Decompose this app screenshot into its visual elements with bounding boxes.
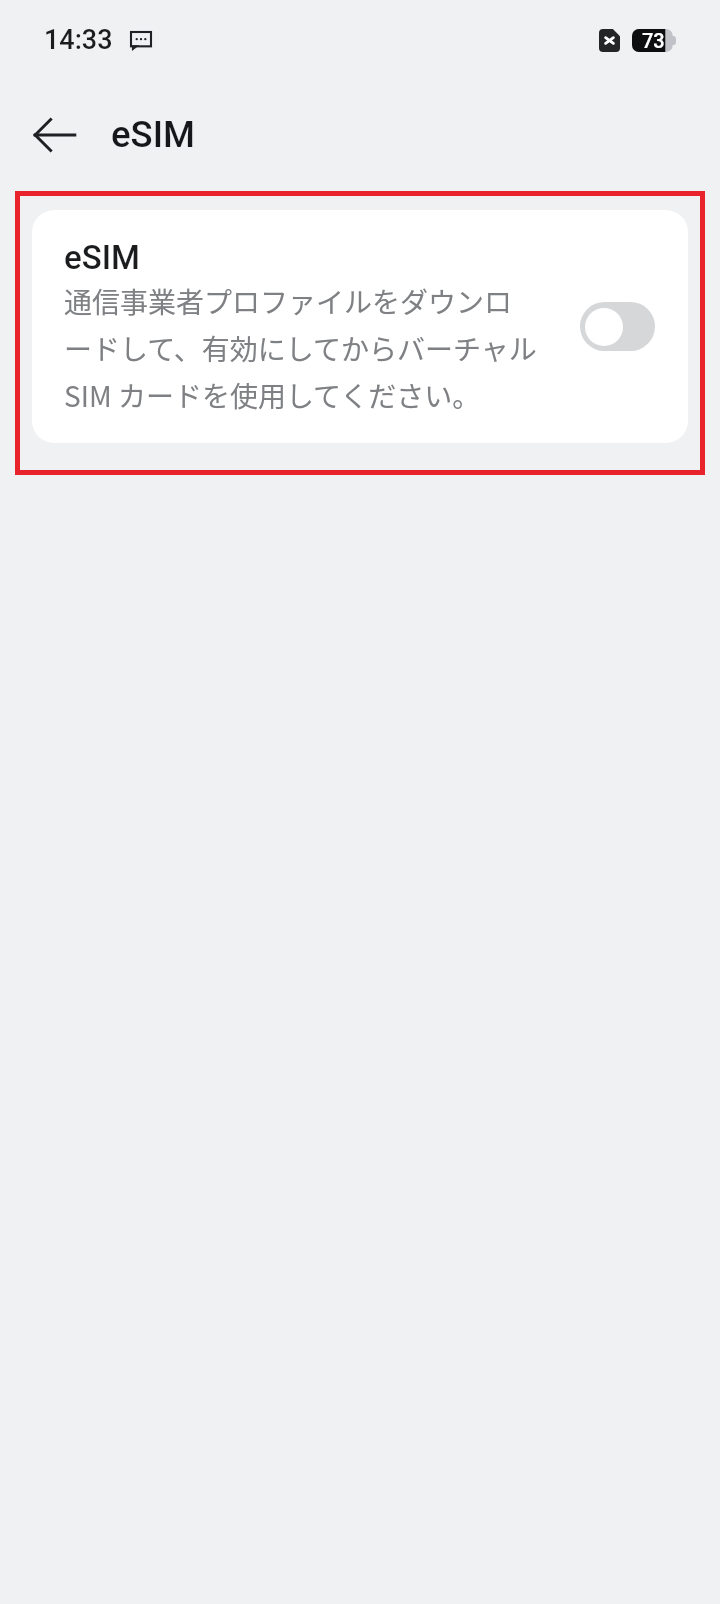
staticText: 通信事業者プロファイルをダウンロ ードして、有効にしてからバーチャル SIM カ…	[64, 281, 537, 415]
staticText: eSIM	[64, 238, 140, 277]
button[interactable]: Back	[19, 99, 91, 171]
staticText: 73	[642, 29, 665, 52]
staticText: 14:33	[44, 24, 113, 56]
button[interactable]: eSIM	[32, 210, 688, 443]
staticText: eSIM	[111, 113, 195, 156]
button[interactable]: Enable eSIM	[580, 302, 655, 351]
